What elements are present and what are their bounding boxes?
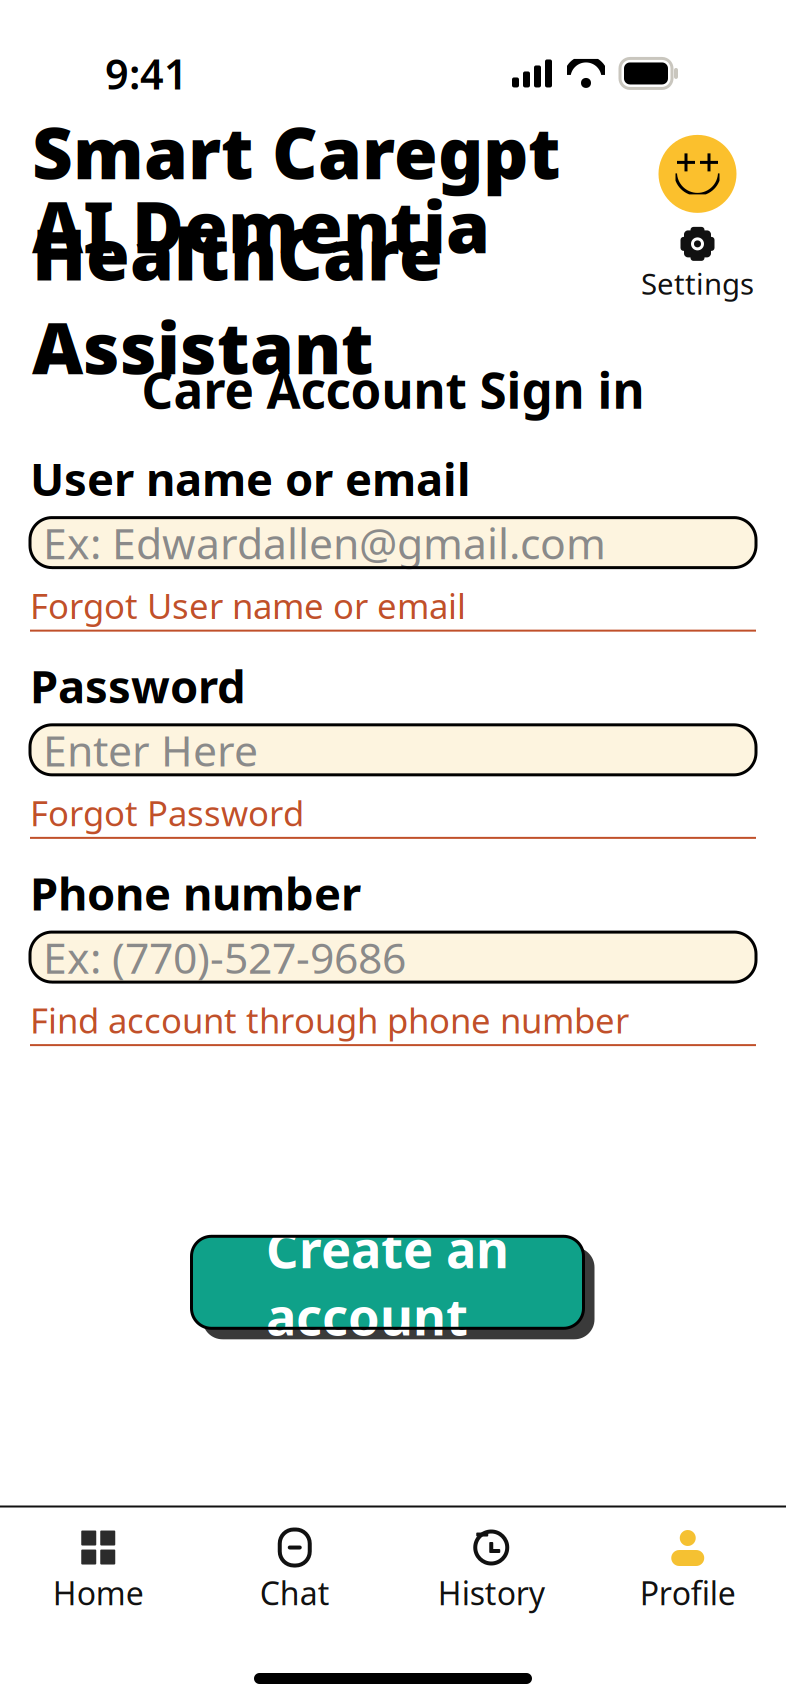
button[interactable]: History xyxy=(393,1525,589,1618)
button[interactable]: Create an account xyxy=(191,1236,594,1339)
staticText: Phone number xyxy=(30,863,361,923)
button[interactable]: Ex: (770)-527-9686 xyxy=(30,932,756,982)
staticText: Ex: (770)-527-9686 xyxy=(43,929,406,985)
staticText: Settings xyxy=(641,264,754,303)
button[interactable]: Profile xyxy=(589,1525,786,1618)
button[interactable]: Enter Here xyxy=(30,725,756,775)
staticText: Profile xyxy=(640,1571,736,1614)
button[interactable]: Forgot User name or email xyxy=(30,568,756,632)
staticText: Forgot Password xyxy=(30,790,304,836)
button[interactable]: Home xyxy=(0,1525,196,1618)
staticText: Care Account Sign in xyxy=(141,357,644,422)
staticText: User name or email xyxy=(30,448,471,509)
staticText: Find account through phone number xyxy=(30,997,629,1043)
staticText: Ex: Edwardallen@gmail.com xyxy=(43,514,606,571)
staticText: Create an account xyxy=(266,1215,509,1350)
staticText: HealthCare Assistant xyxy=(32,206,461,394)
button[interactable]: Find account through phone number xyxy=(30,982,756,1046)
staticText: 9:41 xyxy=(105,46,188,101)
button[interactable]: Settings xyxy=(641,227,754,303)
staticText: Smart Caregpt xyxy=(32,105,561,199)
staticText: Forgot User name or email xyxy=(30,583,466,629)
button[interactable]: Chat xyxy=(196,1525,393,1618)
staticText: History xyxy=(438,1571,545,1614)
staticText: Chat xyxy=(260,1571,330,1614)
staticText: Password xyxy=(30,656,246,716)
button[interactable]: Ex: Edwardallen@gmail.com xyxy=(30,518,756,568)
button[interactable]: Add entry xyxy=(658,135,736,213)
button[interactable]: Forgot Password xyxy=(30,775,756,839)
staticText: Home xyxy=(53,1571,144,1614)
staticText: Enter Here xyxy=(43,721,258,778)
staticText: AI Dementia xyxy=(32,179,490,273)
